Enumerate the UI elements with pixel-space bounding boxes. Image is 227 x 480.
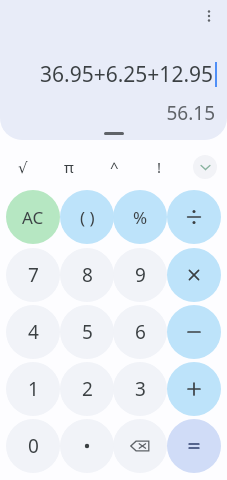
button[interactable]: Equals	[167, 419, 221, 473]
button[interactable]: Expand display	[104, 132, 124, 135]
staticText: 9	[135, 262, 146, 288]
button[interactable]: π	[46, 150, 92, 184]
staticText: ^	[110, 157, 119, 177]
button[interactable]: !	[137, 150, 182, 184]
staticText: 2	[82, 376, 93, 402]
button[interactable]: 6	[113, 305, 167, 359]
button[interactable]: 3	[113, 362, 167, 416]
button[interactable]: Plus	[167, 362, 221, 416]
staticText: ( )	[80, 206, 95, 229]
button[interactable]: 7	[6, 248, 60, 302]
staticText: 4	[28, 319, 39, 345]
staticText: 56.15	[166, 100, 215, 126]
button[interactable]: 2	[60, 362, 114, 416]
button[interactable]: 5	[60, 305, 114, 359]
button[interactable]: Backspace	[113, 419, 167, 473]
staticText: 36.95+6.25+12.95	[40, 60, 214, 89]
button[interactable]: More functions	[193, 155, 217, 179]
staticText: 5	[82, 319, 93, 345]
staticText: %	[133, 206, 148, 229]
staticText: π	[64, 157, 74, 177]
button[interactable]: ^	[92, 150, 137, 184]
staticText: 1	[28, 376, 39, 402]
staticText: √	[18, 159, 28, 176]
button[interactable]: 9	[113, 248, 167, 302]
button[interactable]: ( )	[60, 190, 114, 244]
staticText: !	[157, 157, 162, 177]
button[interactable]: 4	[6, 305, 60, 359]
button[interactable]: 1	[6, 362, 60, 416]
staticText: AC	[22, 206, 44, 229]
button[interactable]: Divide	[167, 190, 221, 244]
button[interactable]: More options	[195, 2, 223, 30]
button[interactable]: Minus	[167, 305, 221, 359]
button[interactable]: AC	[6, 190, 60, 244]
staticText: 0	[28, 433, 39, 459]
staticText: 6	[135, 319, 146, 345]
staticText: 3	[135, 376, 146, 402]
button[interactable]: %	[113, 190, 167, 244]
button[interactable]: Multiply	[167, 248, 221, 302]
staticText: 8	[82, 262, 93, 288]
button[interactable]: 0	[6, 419, 60, 473]
button[interactable]: 8	[60, 248, 114, 302]
button[interactable]: Decimal point	[60, 419, 114, 473]
button[interactable]: √	[0, 150, 46, 184]
staticText: 7	[28, 262, 39, 288]
